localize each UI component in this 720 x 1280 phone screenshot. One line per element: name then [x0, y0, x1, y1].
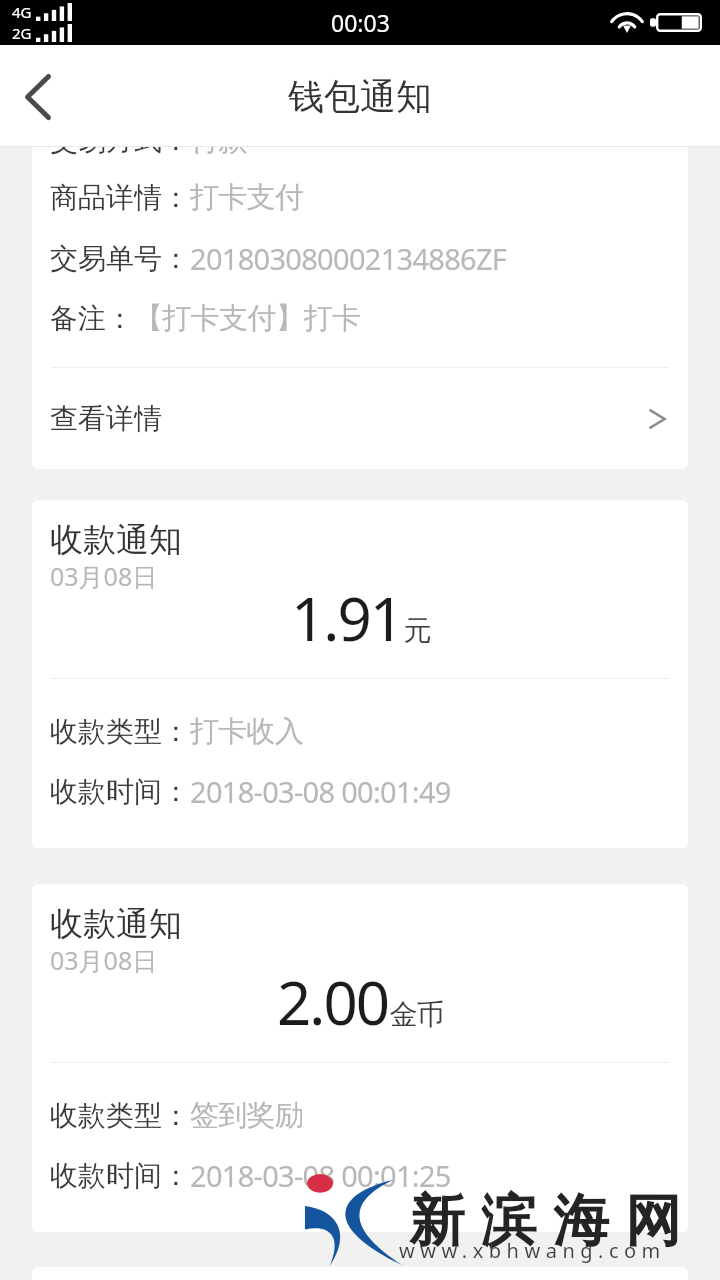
staticText: 03月08日 [50, 559, 158, 593]
staticText: 1.91 [291, 577, 403, 659]
staticText: 交易单号： [50, 241, 190, 276]
staticText: 收款通知 [50, 519, 182, 561]
staticText: 商品详情： [50, 180, 190, 215]
staticText: 签到奖励 [190, 1097, 304, 1134]
staticText: 备注： [50, 301, 134, 336]
staticText: 元 [404, 613, 431, 648]
staticText: 2.00 [277, 961, 389, 1043]
staticText: 金币 [390, 997, 444, 1032]
staticText: 钱包通知 [288, 74, 432, 119]
staticText: 打卡收入 [190, 713, 304, 750]
staticText: 【打卡支付】打卡 [134, 300, 361, 337]
staticText: 收款通知 [50, 903, 182, 945]
staticText: 查看详情 [50, 401, 162, 436]
staticText: 00:03 [331, 7, 390, 38]
staticText: www.xbhwang.com [399, 1237, 666, 1264]
button[interactable]: 查看详情 [32, 368, 688, 469]
staticText: 收款类型： [50, 1098, 190, 1133]
staticText: 新滨海网 [401, 1186, 689, 1257]
staticText: 2018-03-08 00:01:49 [190, 772, 451, 811]
staticText: 201803080002134886ZF [190, 239, 507, 278]
staticText: 2018-03-08 00:01:25 [190, 1156, 451, 1195]
staticText: 收款时间： [50, 774, 190, 809]
staticText: 03月08日 [50, 943, 158, 977]
staticText: 付款 [190, 122, 247, 159]
staticText: 打卡支付 [190, 179, 304, 216]
button[interactable]: Back [0, 46, 76, 147]
staticText: 收款时间： [50, 1158, 190, 1193]
staticText: 2G [12, 23, 32, 43]
staticText: 4G [12, 2, 32, 22]
staticText: 交易方式： [50, 123, 190, 158]
staticText: 收款类型： [50, 714, 190, 749]
